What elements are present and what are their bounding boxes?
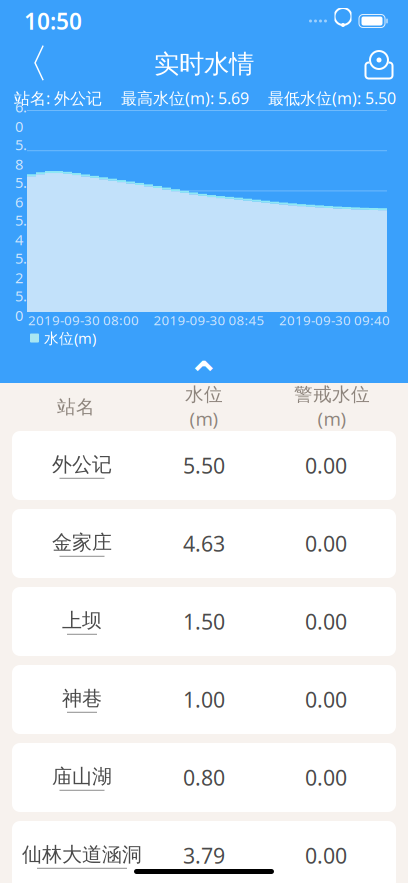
staticText: 4.63 [183,529,225,558]
staticText: 0.00 [305,685,347,714]
staticText: 警戒水位 [294,383,370,406]
staticText: 5.6 [15,173,27,212]
staticText: 5.50 [183,451,225,480]
staticText: 上坝 [62,608,102,633]
staticText: 庙山湖 [52,764,112,789]
staticText: (m) [317,406,346,431]
staticText: 5.2 [15,248,27,287]
staticText: 外公记 [52,452,112,477]
staticText: 5.4 [15,210,27,249]
button[interactable]: 金家庄 [12,509,396,578]
staticText: 0.00 [305,607,347,636]
staticText: 水位 [185,383,223,406]
staticText: 2019-09-30 08:45 [153,311,264,329]
button[interactable]: 收起图表 [169,359,239,383]
button[interactable]: 上坝 [12,587,396,656]
staticText: 神巷 [62,686,102,711]
staticText: 6.0 [15,97,27,136]
staticText: 站名 [57,395,95,418]
staticText: 0.00 [305,763,347,792]
staticText: ⌃ [187,353,221,399]
staticText: 1.50 [183,607,225,636]
staticText: 金家庄 [52,530,112,555]
staticText: 0.00 [305,841,347,870]
staticText: 1.00 [183,685,225,714]
staticText: 站名: 外公记 [14,87,102,109]
staticText: 0.00 [305,529,347,558]
staticText: 5.0 [15,286,27,325]
staticText: 最低水位(m): 5.50 [268,87,396,109]
button[interactable]: 庙山湖 [12,743,396,812]
staticText: 仙林大道涵洞 [22,842,142,867]
staticText: 0.00 [305,451,347,480]
staticText: (m) [189,406,218,431]
staticText: 0.80 [183,763,225,792]
staticText: 10:50 [24,6,82,36]
staticText: 2019-09-30 09:40 [279,311,390,329]
staticText: 最高水位(m): 5.69 [121,87,249,109]
staticText: 水位(m) [44,328,96,348]
button[interactable]: 地图 [356,42,402,86]
staticText: 5.8 [15,135,27,174]
staticText: 3.79 [183,841,225,870]
button[interactable]: 神巷 [12,665,396,734]
button[interactable]: 返回 [6,42,52,86]
staticText: 2019-09-30 08:00 [28,311,139,329]
button[interactable]: 外公记 [12,431,396,500]
staticText: 〈 [9,39,49,88]
staticText: 实时水情 [154,48,254,79]
button[interactable]: 仙林大道涵洞 [12,821,396,883]
